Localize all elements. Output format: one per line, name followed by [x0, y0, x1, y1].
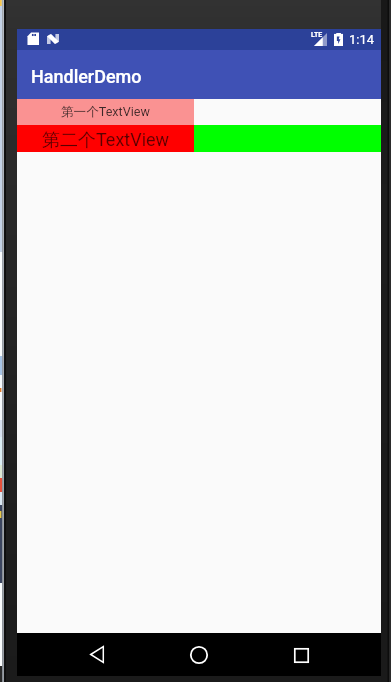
staticText: HandlerDemo — [31, 66, 142, 87]
button[interactable]: Recent apps — [277, 635, 325, 675]
button[interactable]: 第二个TextView — [17, 125, 194, 152]
button[interactable]: Home — [175, 635, 223, 675]
button[interactable]: Back — [73, 634, 121, 674]
button[interactable]: 第一个TextView — [17, 99, 194, 125]
staticText: LTE — [311, 31, 322, 39]
staticText: 第二个TextView — [42, 129, 170, 152]
staticText: 第一个TextView — [61, 104, 150, 120]
staticText: 1:14 — [349, 32, 375, 47]
